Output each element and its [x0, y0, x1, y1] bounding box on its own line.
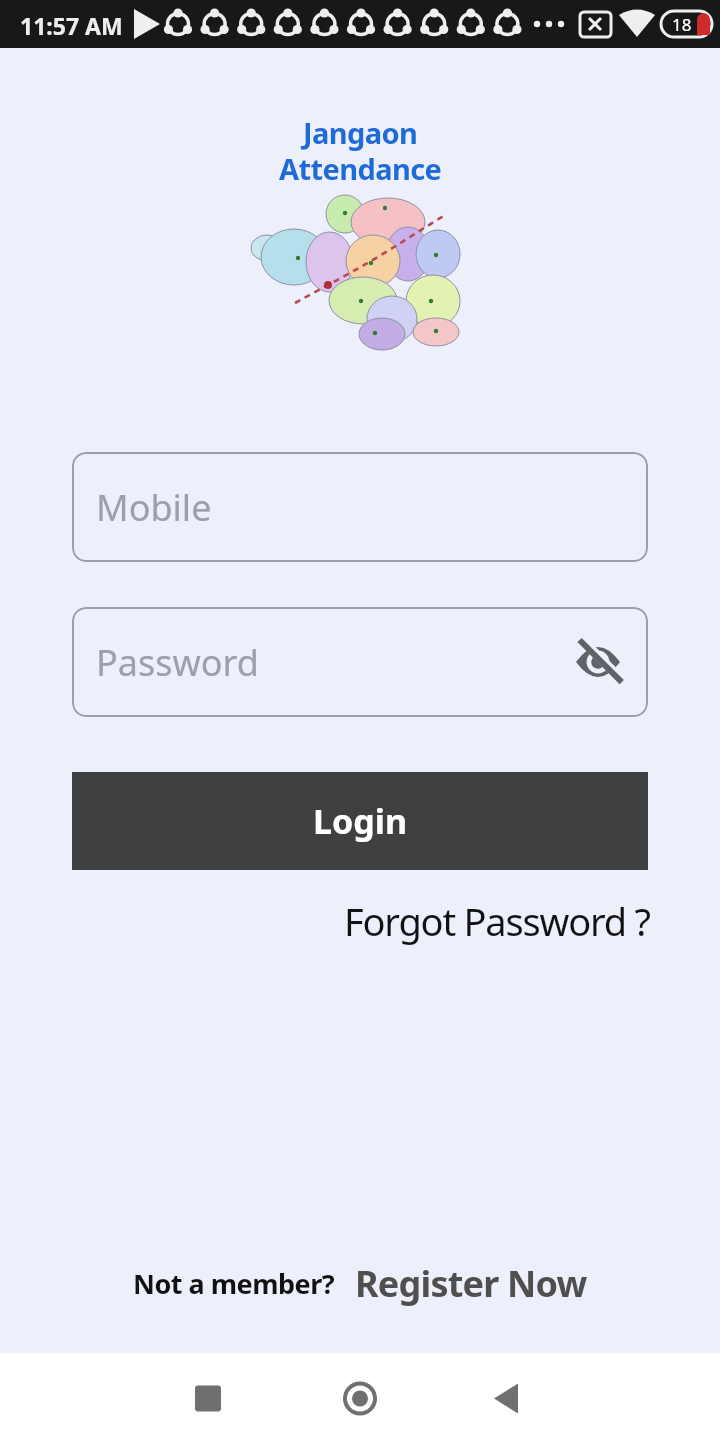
button[interactable]: Forgot Password ?: [344, 895, 650, 947]
staticText: 18: [672, 13, 692, 36]
staticText: Forgot Password ?: [344, 895, 650, 947]
staticText: Mobile: [96, 483, 212, 532]
staticText: Attendance: [279, 149, 442, 188]
button[interactable]: Login: [72, 772, 648, 870]
staticText: Password: [96, 638, 259, 687]
button[interactable]: Password: [72, 607, 648, 717]
staticText: 11:57 AM: [20, 10, 123, 41]
staticText: Jangaon: [303, 113, 418, 152]
staticText: Register Now: [355, 1259, 587, 1308]
button[interactable]: Register Now: [355, 1259, 587, 1308]
staticText: Login: [313, 798, 408, 844]
staticText: Not a member?: [133, 1265, 335, 1302]
button[interactable]: Mobile: [72, 452, 648, 562]
